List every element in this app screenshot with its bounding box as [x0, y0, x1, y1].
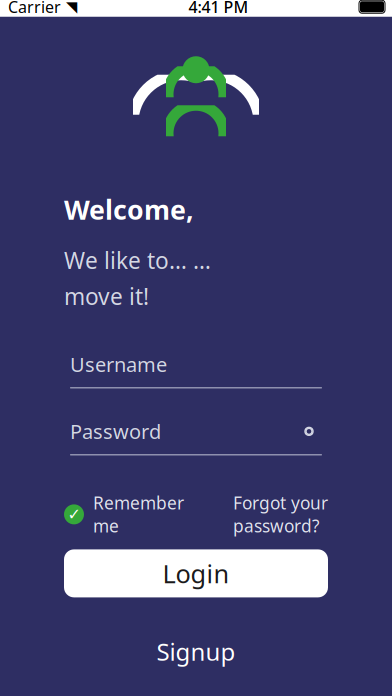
button[interactable]: ✓ — [64, 487, 184, 541]
staticText: ✓ — [67, 505, 80, 523]
button[interactable]: Login — [64, 549, 328, 597]
staticText: Remember me — [93, 491, 184, 537]
staticText: Signup — [156, 635, 235, 667]
staticText: move it! — [64, 281, 149, 311]
staticText: Password — [70, 418, 161, 445]
button[interactable]: Show password — [296, 421, 322, 441]
staticText: Username — [70, 351, 167, 378]
staticText: Login — [162, 557, 229, 590]
button[interactable]: Signup — [136, 629, 255, 673]
staticText: Carrier — [8, 0, 61, 17]
staticText: ◥ — [66, 0, 77, 15]
staticText: Forgot your password? — [233, 491, 328, 537]
staticText: We like to… … — [64, 245, 211, 275]
staticText: Welcome, — [64, 192, 194, 227]
button[interactable]: Forgot your password? — [233, 487, 328, 541]
staticText: 4:41 PM — [188, 0, 248, 17]
